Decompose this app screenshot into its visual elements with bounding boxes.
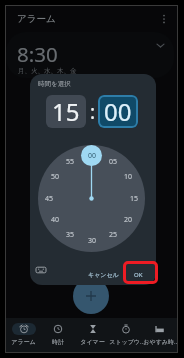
- staticText: 15: [52, 95, 80, 128]
- staticText: 50: [51, 172, 60, 182]
- staticText: 15: [130, 194, 139, 204]
- staticText: 25: [109, 230, 118, 240]
- staticText: :: [90, 99, 96, 125]
- staticText: 05: [109, 157, 118, 167]
- button[interactable]: OK: [130, 268, 147, 282]
- staticText: 35: [66, 230, 75, 240]
- staticText: タイマー: [80, 338, 105, 346]
- staticText: アラーム: [17, 13, 56, 25]
- staticText: 30: [88, 236, 97, 246]
- staticText: 20: [124, 215, 133, 225]
- staticText: 40: [51, 215, 60, 225]
- staticText: キャンセル: [88, 271, 119, 279]
- button[interactable]: More options: [155, 10, 173, 28]
- button[interactable]: ストップウ…: [109, 318, 143, 352]
- staticText: OK: [134, 271, 143, 279]
- staticText: 45: [45, 194, 54, 204]
- staticText: 月、火、水、木、金: [18, 67, 77, 75]
- button[interactable]: 8:30: [6, 32, 174, 78]
- staticText: 00: [88, 151, 97, 161]
- button[interactable]: キャンセル: [85, 268, 122, 282]
- staticText: 00: [104, 95, 132, 128]
- button[interactable]: 00: [98, 95, 138, 128]
- staticText: 55: [66, 157, 75, 167]
- button[interactable]: 15: [46, 95, 86, 128]
- staticText: 8:30: [17, 40, 58, 68]
- button[interactable]: おやすみ時…: [143, 318, 177, 352]
- button[interactable]: Expand alarm: [153, 38, 167, 52]
- staticText: 時計: [52, 338, 64, 346]
- button[interactable]: 時計: [41, 318, 75, 352]
- staticText: アラーム: [11, 338, 36, 346]
- staticText: 10: [124, 172, 133, 182]
- staticText: おやすみ時…: [143, 338, 177, 346]
- button[interactable]: アラーム: [6, 318, 41, 352]
- button[interactable]: タイマー: [75, 318, 109, 352]
- button[interactable]: Switch to text input: [34, 263, 48, 277]
- button[interactable]: Add alarm: [73, 278, 109, 314]
- staticText: 時間を選択: [38, 80, 71, 88]
- staticText: ストップウ…: [109, 338, 143, 346]
